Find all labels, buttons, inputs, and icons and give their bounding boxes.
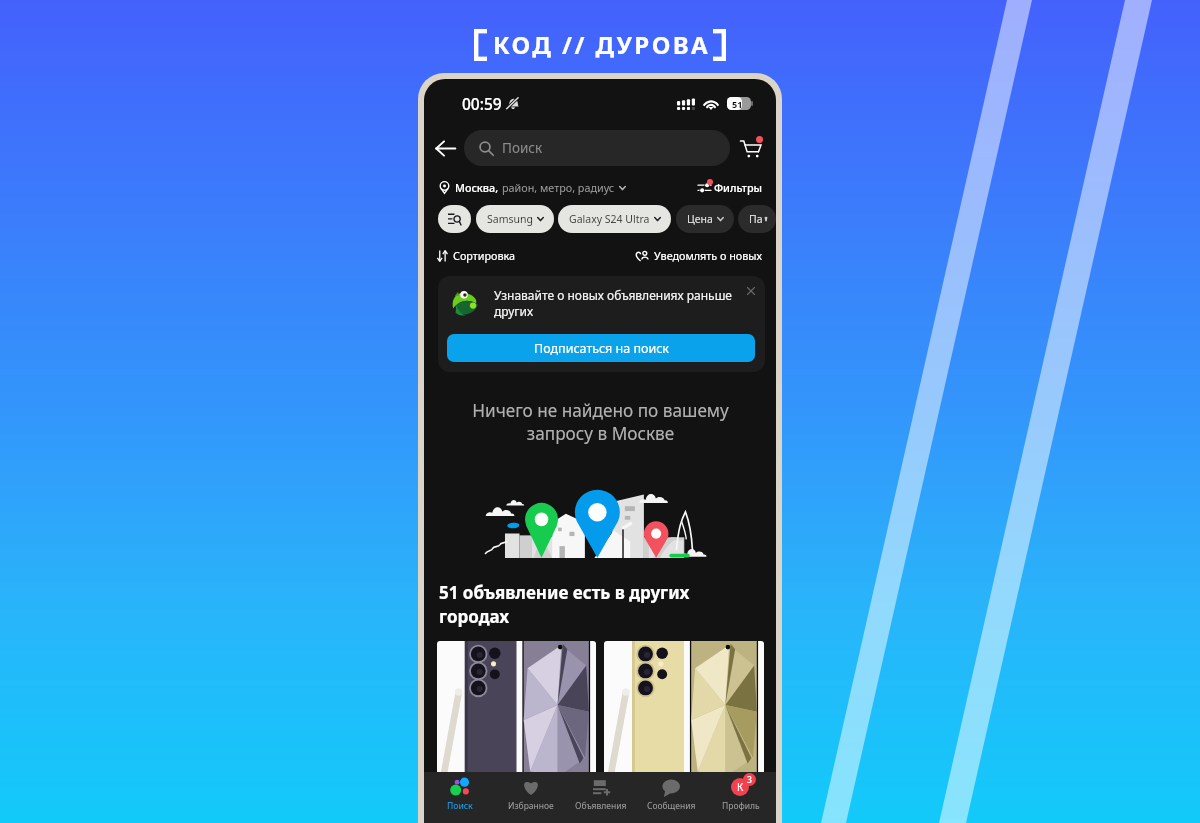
button[interactable]: Память: [738, 205, 776, 233]
staticText: К: [737, 780, 744, 794]
button[interactable]: Поиск: [464, 130, 730, 166]
button[interactable]: Назад: [430, 133, 460, 163]
button[interactable]: Избранное: [495, 772, 566, 823]
button[interactable]: Корзина: [736, 134, 764, 162]
staticText: Цена: [687, 212, 713, 226]
staticText: Поиск: [502, 139, 543, 157]
staticText: Galaxy S24 Ultra: [569, 212, 650, 226]
staticText: Samsung: [487, 212, 533, 226]
button[interactable]: Фильтры: [698, 180, 763, 195]
button[interactable]: Samsung: [476, 205, 554, 233]
button[interactable]: Galaxy S24 Ultra: [558, 205, 671, 233]
staticText: Фильтры: [714, 180, 763, 195]
button[interactable]: [604, 641, 764, 777]
staticText: Память: [749, 212, 766, 226]
button[interactable]: Объявления: [566, 772, 636, 823]
staticText: 00:59: [462, 93, 502, 114]
staticText: Подписаться на поиск: [534, 340, 669, 357]
staticText: Уведомлять о новых: [654, 248, 763, 263]
staticText: Объявления: [575, 800, 627, 812]
button[interactable]: [437, 641, 596, 777]
staticText: район, метро, радиус: [502, 180, 615, 195]
button[interactable]: Сортировка: [437, 248, 516, 263]
staticText: Ничего не найдено по вашему запросу в Мо…: [472, 399, 729, 445]
staticText: Москва,: [455, 180, 499, 195]
staticText: КОД // ДУРОВА: [493, 28, 710, 61]
staticText: 51: [732, 98, 743, 110]
staticText: 3: [747, 774, 752, 786]
staticText: 51 объявление есть в других городах: [439, 581, 739, 628]
button[interactable]: Цена: [676, 205, 734, 233]
staticText: Сортировка: [453, 248, 516, 263]
staticText: Сообщения: [647, 800, 696, 812]
button[interactable]: Сообщения: [636, 772, 706, 823]
button[interactable]: К: [706, 772, 776, 823]
button[interactable]: Поиск: [424, 772, 495, 823]
staticText: Профиль: [722, 800, 760, 812]
staticText: Поиск: [447, 800, 473, 812]
button[interactable]: Москва,: [438, 180, 626, 195]
staticText: Избранное: [508, 800, 554, 812]
button[interactable]: Уведомлять о новых: [635, 248, 763, 263]
button[interactable]: Закрыть: [744, 284, 758, 298]
button[interactable]: Подписаться на поиск: [447, 334, 755, 362]
staticText: Узнавайте о новых объявлениях раньше дру…: [494, 287, 742, 320]
button[interactable]: Поиск по фильтрам: [438, 205, 471, 233]
